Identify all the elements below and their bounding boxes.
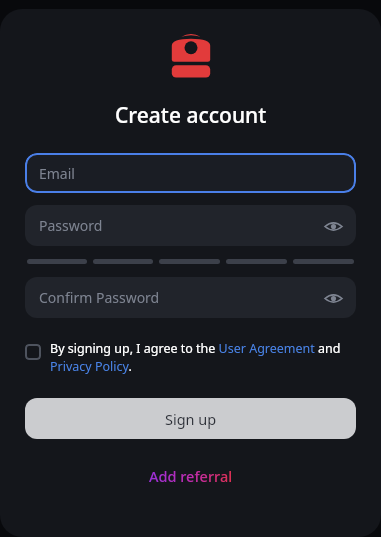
button[interactable]: Sign up: [25, 398, 356, 439]
other: Agree to terms checkbox: [25, 344, 41, 360]
staticText: Create account: [115, 101, 267, 130]
staticText: Confirm Password: [39, 288, 160, 307]
button[interactable]: Confirm Password: [25, 277, 356, 318]
button[interactable]: Password: [25, 205, 356, 246]
staticText: Sign up: [165, 409, 217, 429]
button[interactable]: Add referral: [139, 461, 243, 491]
staticText: Add referral: [149, 466, 233, 486]
button[interactable]: Agree to terms checkbox: [25, 340, 356, 375]
button[interactable]: Show confirm password: [318, 283, 348, 313]
staticText: Password: [39, 216, 103, 235]
staticText: By signing up, I agree to the User Agree…: [50, 340, 356, 375]
staticText: Email: [39, 164, 75, 183]
button[interactable]: Email: [25, 153, 356, 193]
button[interactable]: Show password: [318, 211, 348, 241]
